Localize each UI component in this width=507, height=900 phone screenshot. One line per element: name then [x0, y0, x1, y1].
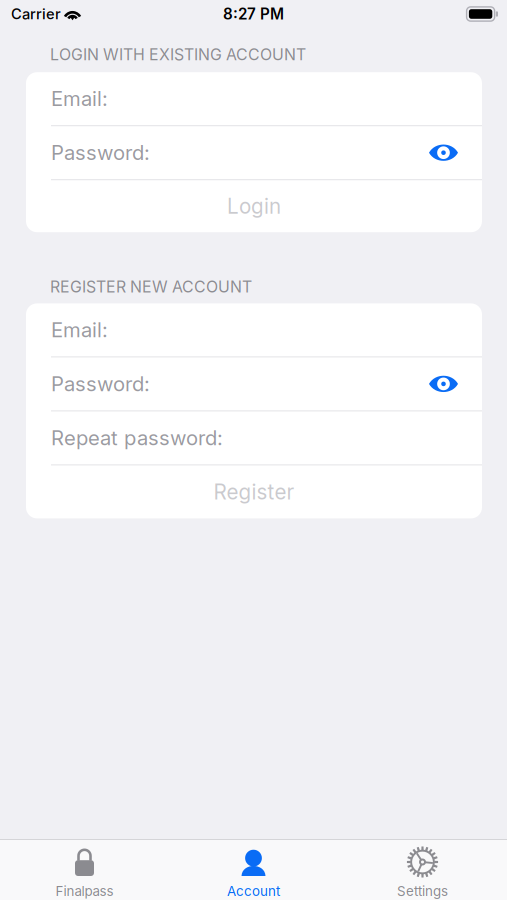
staticText: Email: — [51, 86, 108, 111]
button[interactable]: Password: — [26, 126, 482, 179]
button[interactable]: Password: — [26, 357, 482, 410]
staticText: Repeat password: — [51, 426, 223, 450]
button[interactable]: Email: — [26, 303, 482, 356]
staticText: Password: — [51, 140, 150, 165]
button[interactable]: Settings — [338, 840, 507, 900]
button[interactable]: Register — [26, 465, 482, 518]
staticText: Login — [227, 194, 281, 219]
staticText: Finalpass — [55, 883, 113, 899]
staticText: Password: — [51, 372, 150, 396]
staticText: Carrier — [11, 5, 61, 23]
staticText: Register — [213, 479, 294, 504]
button[interactable]: Repeat password: — [26, 411, 482, 464]
staticText: 8:27 PM — [223, 5, 284, 23]
staticText: Email: — [51, 318, 108, 342]
staticText: LOGIN WITH EXISTING ACCOUNT — [50, 45, 306, 64]
button[interactable]: Finalpass — [0, 840, 169, 900]
staticText: REGISTER NEW ACCOUNT — [50, 277, 252, 296]
staticText: Account — [227, 883, 280, 899]
staticText: Settings — [397, 883, 448, 899]
button[interactable]: Account — [169, 840, 338, 900]
button[interactable]: Email: — [26, 72, 482, 125]
button[interactable]: Login — [26, 180, 482, 232]
